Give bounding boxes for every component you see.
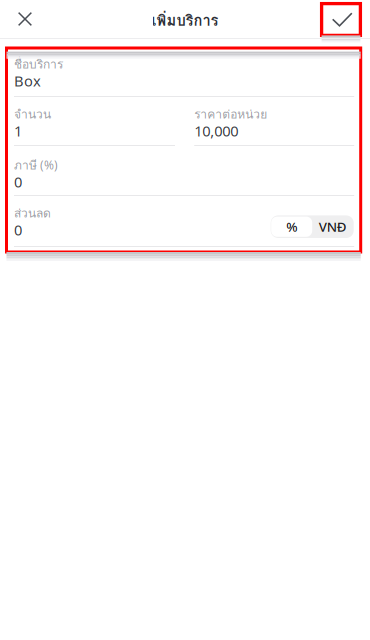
button[interactable]: Close — [0, 0, 50, 38]
button[interactable]: VNĐ — [312, 217, 353, 237]
button[interactable]: Save — [321, 0, 370, 38]
button[interactable]: % — [271, 217, 312, 237]
staticText: 0 — [14, 220, 22, 239]
button[interactable]: ภาษี (%) — [14, 146, 354, 196]
staticText: ชื่อบริการ — [14, 55, 63, 74]
staticText: ภาษี (%) — [14, 156, 58, 175]
button[interactable]: ราคาต่อหน่วย — [194, 97, 354, 146]
staticText: VNĐ — [319, 218, 347, 235]
staticText: 10,000 — [194, 121, 238, 140]
button[interactable]: ชื่อบริการ — [14, 51, 354, 97]
staticText: ราคาต่อหน่วย — [194, 105, 267, 124]
staticText: 1 — [14, 121, 22, 140]
button[interactable]: ส่วนลด — [14, 196, 142, 234]
staticText: Box — [14, 71, 41, 90]
staticText: 0 — [14, 172, 22, 191]
staticText: ส่วนลด — [14, 204, 51, 223]
button[interactable]: จำนวน — [14, 97, 175, 146]
staticText: จำนวน — [14, 105, 51, 124]
staticText: เพิ่มบริการ — [151, 9, 218, 32]
staticText: % — [286, 218, 297, 235]
